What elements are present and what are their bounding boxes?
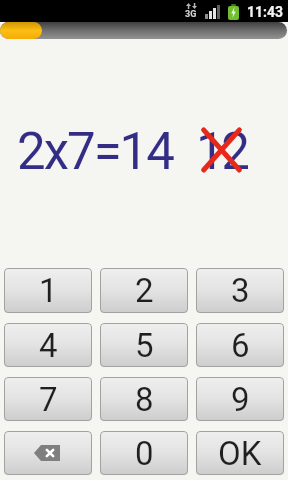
button[interactable]: 2	[100, 268, 188, 313]
button[interactable]: 9	[196, 377, 284, 421]
button[interactable]	[4, 431, 92, 475]
button[interactable]: 7	[4, 377, 92, 421]
button[interactable]: 4	[4, 323, 92, 367]
staticText: 1	[39, 271, 58, 310]
staticText: 5	[135, 326, 154, 365]
staticText: 11:43	[247, 4, 284, 20]
button[interactable]: 5	[100, 323, 188, 367]
staticText: 6	[231, 326, 250, 365]
staticText: 3G	[185, 9, 197, 20]
staticText: 9	[231, 380, 250, 419]
staticText: 3	[231, 271, 250, 310]
staticText: 7	[39, 380, 58, 419]
button[interactable]: 1	[4, 268, 92, 313]
button[interactable]: 0	[100, 431, 188, 475]
staticText: 8	[135, 380, 154, 419]
button[interactable]: 3	[196, 268, 284, 313]
staticText: 12	[196, 122, 247, 182]
staticText: OK	[218, 434, 262, 473]
button[interactable]: 6	[196, 323, 284, 367]
staticText: 2	[135, 271, 154, 310]
staticText: 4	[39, 326, 58, 365]
staticText: 2x7=14	[17, 122, 173, 182]
button[interactable]: OK	[196, 431, 284, 475]
button[interactable]: 8	[100, 377, 188, 421]
staticText: 0	[135, 434, 154, 473]
